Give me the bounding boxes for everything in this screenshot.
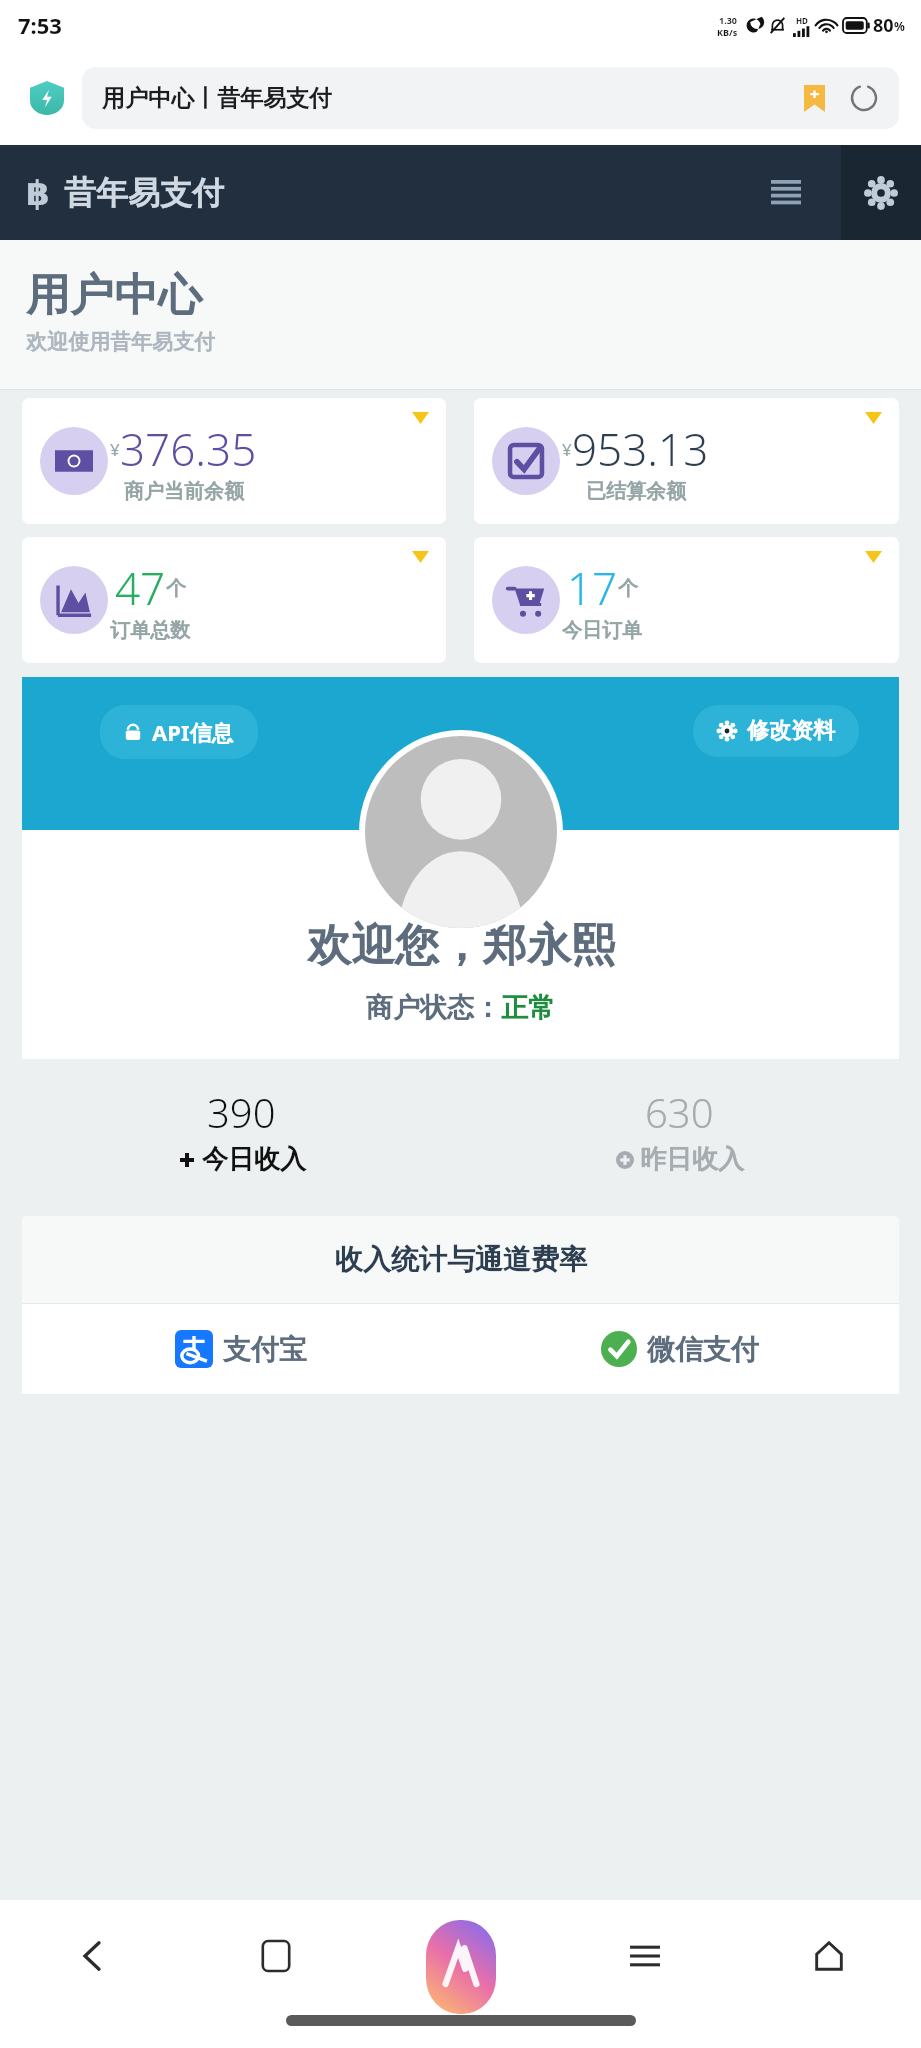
button[interactable]: Home <box>792 1918 866 1994</box>
staticText: 欢迎使用昔年易支付 <box>26 329 215 355</box>
staticText: 欢迎您，郑永熙 <box>307 918 615 973</box>
staticText: 个 <box>166 576 186 601</box>
button[interactable]: 用户中心丨昔年易支付 <box>82 67 899 129</box>
staticText: 昔年易支付 <box>64 173 224 213</box>
other: Site security <box>30 81 64 115</box>
button[interactable]: Menu <box>608 1918 682 1994</box>
staticText: API信息 <box>152 717 234 747</box>
button[interactable]: ¥ <box>22 398 446 524</box>
button[interactable]: Menu <box>759 166 813 220</box>
button[interactable]: 47 <box>22 537 446 663</box>
staticText: 630 <box>645 1085 714 1139</box>
staticText: 390 <box>207 1085 276 1139</box>
staticText: 个 <box>618 576 638 601</box>
button[interactable]: ฿ <box>26 173 224 213</box>
staticText: 商户状态：正常 <box>366 991 555 1025</box>
button[interactable]: Avatar <box>365 736 557 928</box>
other: Bookmark <box>804 85 825 112</box>
button[interactable]: API信息 <box>100 705 258 759</box>
staticText: 支付宝 <box>223 1332 307 1367</box>
staticText: HD <box>796 15 808 26</box>
staticText: ฿ <box>26 173 50 213</box>
staticText: 修改资料 <box>747 717 835 745</box>
other: Reload <box>849 83 879 113</box>
staticText: 已结算余额 <box>586 479 686 504</box>
button[interactable]: Back <box>55 1918 129 1994</box>
staticText: 微信支付 <box>647 1332 759 1367</box>
staticText: 376.35 <box>120 419 257 479</box>
button[interactable]: 微信支付 <box>460 1331 899 1367</box>
staticText: 80 <box>873 13 894 38</box>
staticText: 昨日收入 <box>640 1143 744 1176</box>
staticText: ¥ <box>110 438 120 461</box>
staticText: 47 <box>115 558 166 618</box>
button[interactable]: 630 <box>460 1085 899 1176</box>
staticText: 今日订单 <box>562 618 642 643</box>
staticText: 用户中心丨昔年易支付 <box>102 84 804 113</box>
staticText: 今日收入 <box>202 1143 306 1176</box>
button[interactable]: 修改资料 <box>693 705 859 757</box>
button[interactable]: Settings <box>841 145 921 240</box>
button[interactable]: 390 <box>22 1085 460 1176</box>
button[interactable]: Assistant <box>424 1918 498 2016</box>
button[interactable]: 支付宝 <box>22 1330 460 1368</box>
button[interactable]: 17 <box>474 537 899 663</box>
staticText: 订单总数 <box>110 618 190 643</box>
staticText: 17 <box>567 558 618 618</box>
staticText: 商户当前余额 <box>124 479 244 504</box>
button[interactable]: ¥ <box>474 398 899 524</box>
staticText: 收入统计与通道费率 <box>335 1242 587 1277</box>
staticText: 1.30 <box>719 14 737 26</box>
staticText: 用户中心 <box>26 268 202 323</box>
staticText: % <box>894 18 905 34</box>
staticText: ¥ <box>562 438 572 461</box>
staticText: 7:53 <box>18 10 62 40</box>
button[interactable]: Tabs <box>239 1918 313 1994</box>
staticText: 953.13 <box>572 419 709 479</box>
staticText: KB/s <box>717 26 738 38</box>
